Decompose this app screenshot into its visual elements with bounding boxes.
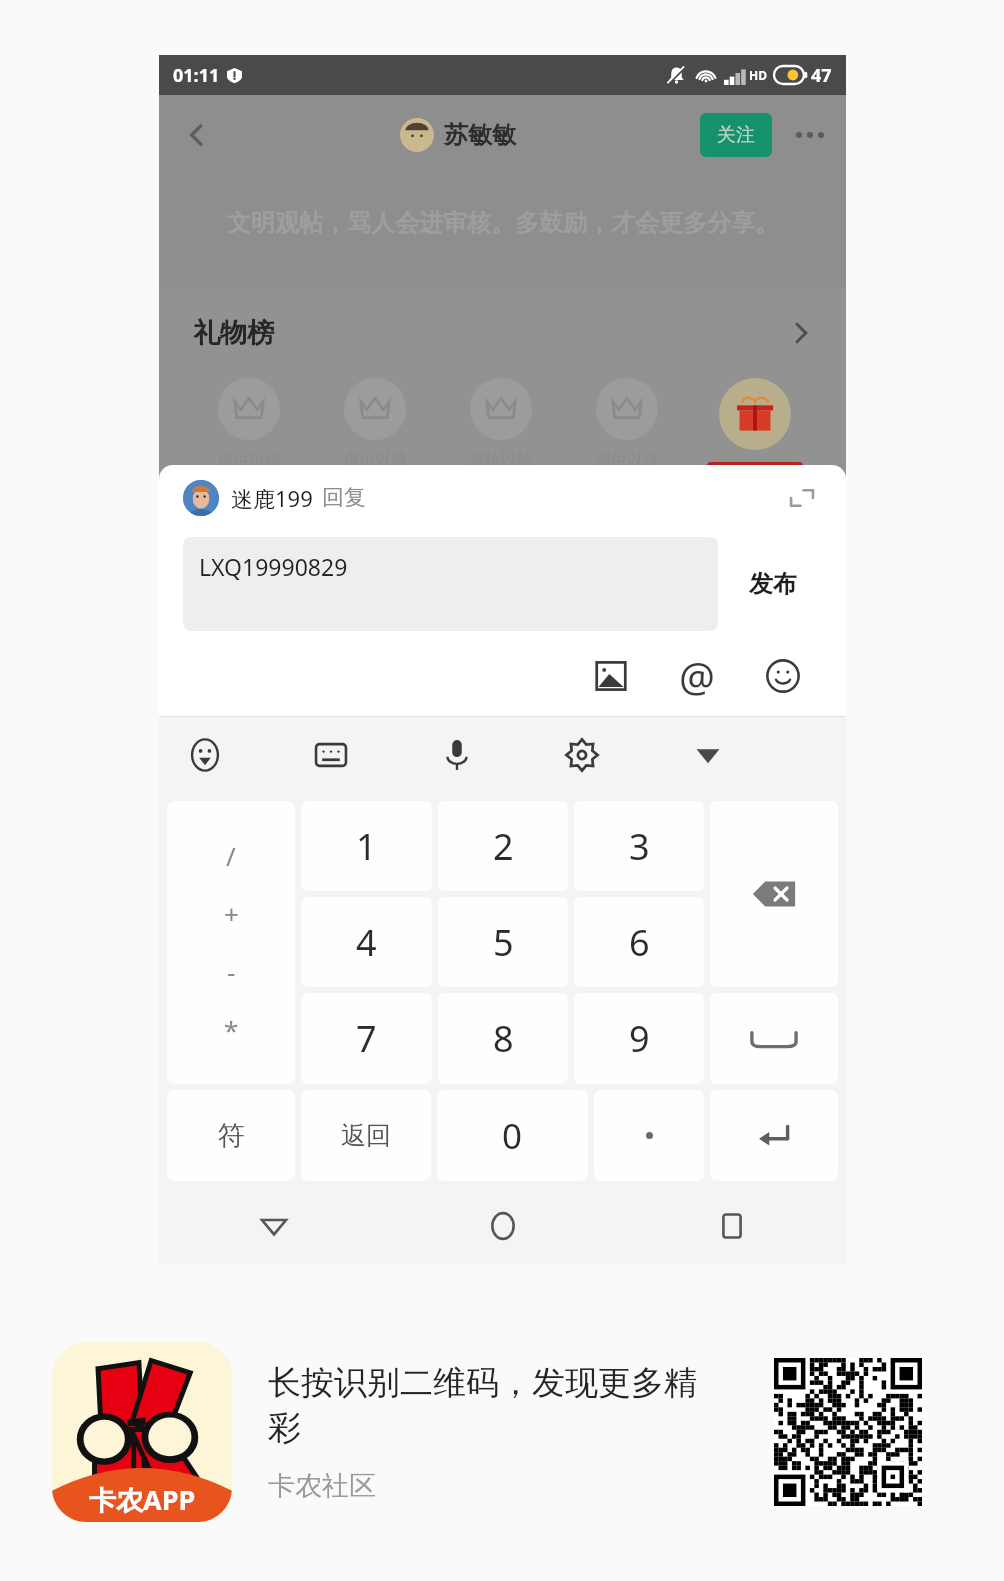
staticText: 虚位以待 xyxy=(469,450,533,470)
button[interactable]: Voice input xyxy=(429,727,485,783)
button[interactable] xyxy=(594,1090,704,1181)
staticText: 卡农社区 xyxy=(268,1469,376,1503)
button[interactable]: QR code xyxy=(774,1358,922,1506)
button[interactable]: Back xyxy=(159,1188,388,1264)
button[interactable]: Expand xyxy=(782,478,822,518)
staticText: 7 xyxy=(356,1014,377,1063)
staticText: 卡农APP xyxy=(89,1481,196,1518)
button[interactable]: Keyboard settings xyxy=(554,727,610,783)
button[interactable]: Enter xyxy=(710,1090,838,1181)
staticText: 0 xyxy=(502,1112,523,1160)
button[interactable]: 送礼上榜 xyxy=(707,462,803,496)
staticText: HD xyxy=(749,67,767,83)
staticText: 礼物榜 xyxy=(193,316,274,350)
button[interactable]: Emoji xyxy=(754,647,812,705)
button[interactable]: 5 xyxy=(438,897,568,987)
staticText: 9 xyxy=(629,1014,650,1063)
button[interactable]: Recent apps xyxy=(617,1188,846,1264)
button[interactable]: Mention xyxy=(668,647,726,705)
button[interactable]: Hide keyboard xyxy=(680,727,736,783)
staticText: 4 xyxy=(356,918,377,967)
button[interactable]: 卡农APP xyxy=(52,1342,232,1522)
staticText: / xyxy=(226,838,236,873)
button[interactable]: LXQ19990829 xyxy=(183,537,718,631)
staticText: 返回 xyxy=(341,1120,391,1151)
button[interactable]: 2 xyxy=(438,801,568,891)
button[interactable]: 发布 xyxy=(718,531,828,636)
button[interactable]: 8 xyxy=(438,993,568,1084)
staticText: 虚位以待 xyxy=(343,450,407,470)
staticText: 迷鹿199 xyxy=(231,483,313,513)
button[interactable]: 9 xyxy=(574,993,704,1084)
button[interactable]: Emoji keyboard xyxy=(177,727,233,783)
button[interactable]: Add image xyxy=(582,647,640,705)
button[interactable]: Space xyxy=(710,993,838,1084)
staticText: 47 xyxy=(811,63,832,88)
button[interactable]: Backspace xyxy=(710,801,838,987)
staticText: 3 xyxy=(629,822,650,871)
staticText: + xyxy=(224,896,239,931)
button[interactable]: More options xyxy=(792,117,828,153)
staticText: 发布 xyxy=(749,569,797,599)
staticText: 5 xyxy=(493,918,514,967)
staticText: 回复 xyxy=(322,484,366,512)
button[interactable]: 6 xyxy=(574,897,704,987)
button[interactable]: 返回 xyxy=(301,1090,431,1181)
staticText: 1 xyxy=(356,822,377,871)
staticText: - xyxy=(227,954,236,989)
button[interactable]: Back xyxy=(177,115,217,155)
staticText: 符 xyxy=(218,1119,245,1153)
button[interactable]: 符 xyxy=(167,1090,295,1181)
staticText: 虚位以待 xyxy=(595,450,659,470)
staticText: 长按识别二维码，发现更多精 彩 xyxy=(268,1362,697,1449)
staticText: @ xyxy=(679,649,715,703)
button[interactable]: 礼物榜 xyxy=(193,288,812,378)
staticText: 虚位以待 xyxy=(217,450,281,470)
staticText: 2 xyxy=(493,822,514,871)
staticText: 关注 xyxy=(717,123,755,147)
button[interactable]: Switch keyboard xyxy=(303,727,359,783)
button[interactable]: 4 xyxy=(301,897,432,987)
button[interactable]: 7 xyxy=(301,993,432,1084)
staticText: 6 xyxy=(629,918,650,967)
button[interactable]: 关注 xyxy=(700,113,772,157)
staticText: 8 xyxy=(493,1014,514,1063)
staticText: * xyxy=(224,1012,239,1047)
button[interactable]: Home xyxy=(388,1188,617,1264)
button[interactable]: 3 xyxy=(574,801,704,891)
button[interactable]: 1 xyxy=(301,801,432,891)
staticText: LXQ19990829 xyxy=(199,551,348,582)
button[interactable]: / xyxy=(167,801,295,1084)
button[interactable]: 0 xyxy=(437,1090,588,1181)
staticText: 文明观帖，骂人会进审核。多鼓励，才会更多分享。 xyxy=(227,208,779,238)
staticText: 01:11 xyxy=(173,63,220,88)
staticText: 苏敏敏 xyxy=(444,120,516,150)
